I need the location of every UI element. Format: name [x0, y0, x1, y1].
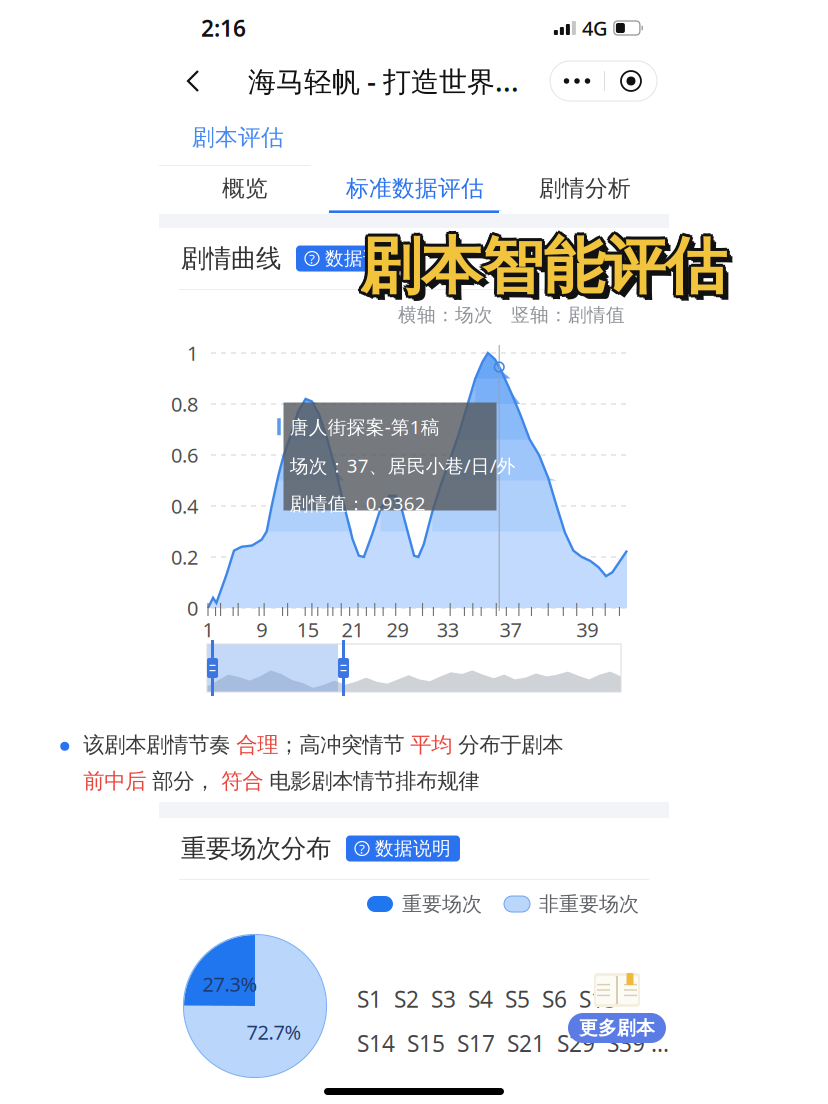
button[interactable]: 标准数据评估 — [329, 166, 499, 214]
button[interactable]: 剧本评估 — [192, 124, 284, 151]
staticText: 剧情值：0.9362 — [290, 491, 426, 516]
staticText: 剧本智能评估 — [358, 227, 724, 302]
staticText: 剧本智能评估 — [360, 226, 726, 301]
staticText: 更多剧本 — [579, 1016, 655, 1039]
staticText: 1 — [202, 616, 213, 643]
staticText: 72.7% — [246, 1019, 301, 1045]
staticText: 0 — [187, 595, 198, 621]
staticText: 概览 — [222, 175, 268, 202]
staticText: 剧本智能评估 — [357, 229, 723, 304]
staticText: 剧本智能评估 — [364, 233, 730, 308]
staticText: 部分， — [146, 768, 221, 794]
button[interactable]: 概览 — [159, 166, 329, 214]
staticText: 剧情分析 — [539, 175, 631, 202]
staticText: 数据说明 — [325, 247, 401, 270]
button[interactable]: More — [550, 61, 604, 101]
staticText: 0.2 — [171, 544, 198, 570]
button[interactable]: 更多剧本 — [568, 975, 666, 1049]
staticText: 前中后 — [83, 768, 146, 794]
staticText: 37 — [499, 616, 521, 643]
staticText: 4G — [582, 15, 608, 41]
staticText: 非重要场次 — [539, 892, 639, 916]
button[interactable]: Back — [171, 58, 217, 104]
staticText: 0.6 — [171, 442, 198, 468]
staticText: ；高冲突情节 — [278, 732, 410, 758]
staticText: 横轴：场次 竖轴：剧情值 — [398, 303, 625, 326]
staticText: S1 S2 S3 S4 S5 S6 S13 — [357, 984, 617, 1014]
staticText: 剧本智能评估 — [358, 231, 724, 306]
button[interactable]: ? — [346, 835, 460, 861]
staticText: ? — [309, 250, 315, 267]
staticText: S14 S15 S17 S21 S29 S39 ... — [357, 1028, 669, 1058]
staticText: 场次：37、居民小巷/日/外 — [290, 453, 516, 478]
staticText: 电影剧本情节排布规律 — [263, 768, 479, 794]
staticText: 符合 — [221, 768, 263, 794]
staticText: 9 — [256, 616, 267, 643]
staticText: 33 — [437, 616, 459, 643]
staticText: 剧情曲线 — [181, 243, 281, 274]
staticText: 剧本评估 — [192, 124, 284, 151]
staticText: 0.8 — [171, 391, 198, 417]
staticText: 唐人街探案-第1稿 — [290, 414, 440, 439]
staticText: 21 — [342, 616, 364, 643]
button[interactable]: 剧情分析 — [499, 166, 669, 214]
staticText: 合理 — [236, 732, 278, 758]
staticText: 剧本智能评估 — [362, 227, 728, 302]
button[interactable]: Close — [605, 61, 657, 101]
staticText: 剧本智能评估 — [363, 229, 729, 304]
staticText: 剧本智能评估 — [360, 232, 726, 307]
staticText: 2:16 — [201, 13, 246, 43]
staticText: 平均 — [410, 732, 452, 758]
staticText: 27.3% — [202, 971, 257, 997]
staticText: 重要场次 — [402, 892, 482, 916]
staticText: 29 — [386, 616, 408, 643]
staticText: 15 — [297, 616, 319, 643]
staticText: 标准数据评估 — [346, 175, 484, 202]
staticText: 0.4 — [171, 493, 198, 519]
staticText: 该剧本剧情节奏 — [83, 732, 236, 758]
staticText: 1 — [187, 340, 198, 366]
staticText: 39 — [576, 616, 598, 643]
staticText: 剧本智能评估 — [360, 229, 726, 304]
staticText: 海马轻帆 - 打造世界... — [248, 62, 519, 100]
staticText: 数据说明 — [375, 837, 451, 860]
staticText: 分布于剧本 — [452, 732, 563, 758]
staticText: 剧本智能评估 — [365, 234, 731, 310]
button[interactable]: ? — [296, 245, 410, 271]
staticText: ? — [359, 840, 365, 857]
staticText: 重要场次分布 — [181, 833, 331, 864]
staticText: 剧本智能评估 — [362, 231, 728, 306]
